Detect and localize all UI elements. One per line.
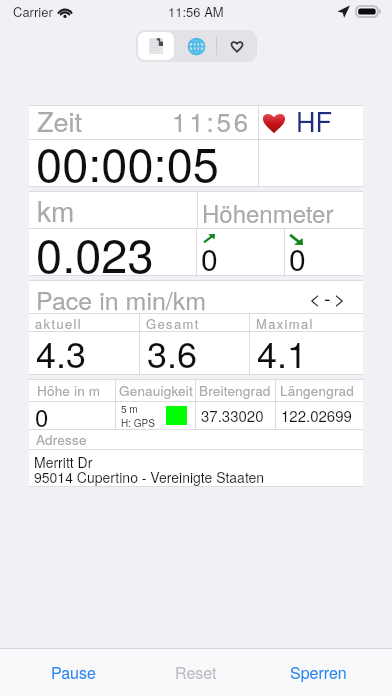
staticText: Längengrad <box>280 381 354 400</box>
staticText: 00:00:05 <box>36 128 219 195</box>
staticText: 0 <box>289 237 306 280</box>
staticText: 37.33020 <box>201 405 264 426</box>
staticText: Breitengrad <box>199 381 271 400</box>
button[interactable]: Karte <box>176 30 216 62</box>
staticText: Carrier <box>13 2 53 21</box>
staticText: 122.02699 <box>281 405 352 426</box>
staticText: Pause <box>51 661 96 684</box>
staticText: Höhe in m <box>37 381 101 400</box>
staticText: 11:56 <box>172 102 252 139</box>
staticText: km <box>37 190 75 230</box>
staticText: 0.023 <box>36 219 154 286</box>
button[interactable]: Sperren <box>257 649 380 696</box>
staticText: HF <box>296 101 332 140</box>
staticText: 3.6 <box>147 327 198 379</box>
staticText: 4.1 <box>257 327 308 379</box>
staticText: Sperren <box>290 661 347 684</box>
staticText: <-> <box>309 283 349 312</box>
staticText: Adresse <box>36 430 87 449</box>
staticText: Höhenmeter <box>202 195 334 229</box>
button[interactable]: Favoriten <box>217 30 257 62</box>
staticText: Gesamt <box>146 314 200 331</box>
staticText: aktuell <box>35 314 83 331</box>
staticText: Zeit <box>37 101 83 140</box>
staticText: 0 <box>201 237 218 280</box>
button[interactable]: Pause <box>12 649 134 696</box>
staticText: Maximal <box>256 314 314 331</box>
staticText: Genauigkeit <box>119 381 193 400</box>
staticText: 5 m <box>121 402 138 416</box>
button[interactable]: Reset <box>134 649 257 696</box>
button[interactable]: Daten <box>138 32 174 60</box>
staticText: 4.3 <box>36 327 87 379</box>
staticText: Pace in min/km <box>36 281 207 317</box>
staticText: H: GPS <box>121 416 155 429</box>
staticText: Merritt Dr 95014 Cupertino - Vereinigte … <box>34 452 265 487</box>
staticText: 11:56 AM <box>168 2 224 21</box>
staticText: 0 <box>35 399 49 433</box>
staticText: Reset <box>175 661 217 684</box>
